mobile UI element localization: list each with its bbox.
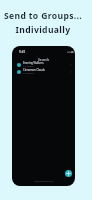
staticText: Search <box>38 57 50 61</box>
staticText: Evening Walkers <box>23 61 44 65</box>
button[interactable]: Cinnamon Clouds <box>12 68 75 75</box>
staticText: 9:41 <box>19 50 26 54</box>
staticText: 4 members <box>23 65 35 68</box>
staticText: 7 members <box>23 72 35 75</box>
staticText: Cinnamon Clouds <box>23 68 45 72</box>
button[interactable]: Evening Walkers <box>12 61 75 68</box>
button[interactable]: Add group <box>65 170 72 177</box>
staticText: Send to Groups... Individually <box>2 10 84 36</box>
